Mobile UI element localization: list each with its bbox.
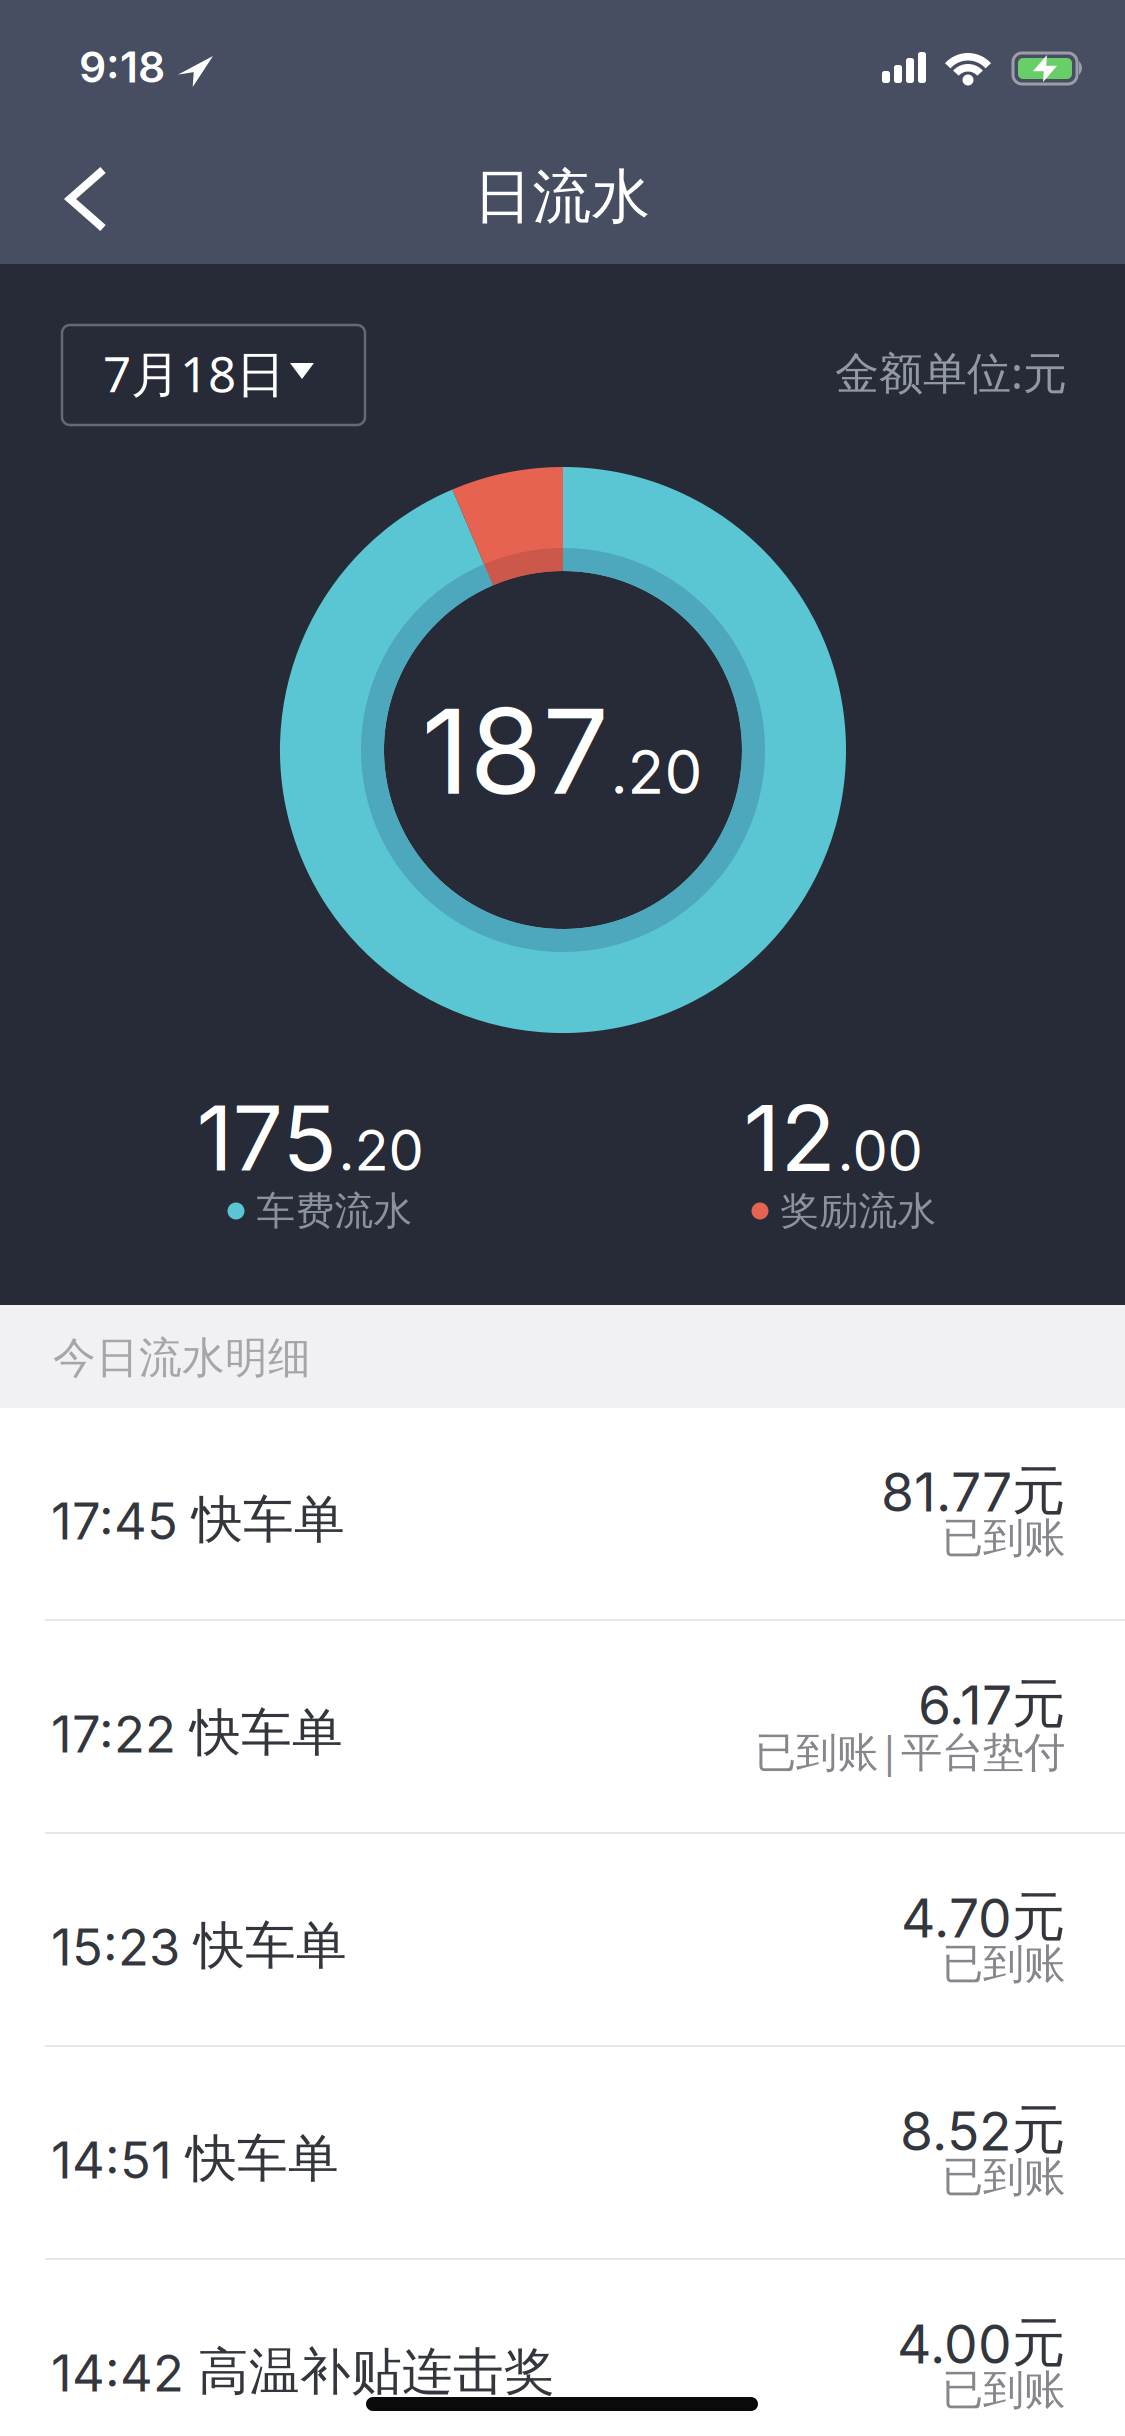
staticText: 金额单位:元 bbox=[835, 342, 1067, 402]
staticText: 17:22 快车单 bbox=[51, 1701, 343, 1765]
staticText: 车费流水 bbox=[256, 1187, 412, 1235]
staticText: .20 bbox=[610, 736, 702, 808]
staticText: .00 bbox=[837, 1117, 922, 1184]
staticText: 已到账 bbox=[942, 2364, 1065, 2416]
staticText: 4.70元 bbox=[901, 1883, 1065, 1951]
staticText: 15:23 快车单 bbox=[51, 1914, 347, 1978]
staticText: 7月18日 bbox=[103, 339, 285, 407]
staticText: 187 bbox=[421, 680, 608, 822]
staticText: 日流水 bbox=[473, 160, 650, 234]
staticText: 17:45 快车单 bbox=[51, 1488, 345, 1552]
staticText: 已到账 bbox=[942, 2151, 1065, 2203]
staticText: .20 bbox=[338, 1116, 423, 1184]
staticText: 14:42 高温补贴连击奖 bbox=[51, 2340, 555, 2404]
staticText: 4.00元 bbox=[897, 2309, 1065, 2377]
staticText: 14:51 快车单 bbox=[51, 2127, 339, 2191]
staticText: 已到账 bbox=[942, 1512, 1065, 1564]
staticText: 9:18 bbox=[79, 41, 165, 93]
staticText: 已到账 bbox=[942, 1938, 1065, 1990]
staticText: 奖励流水 bbox=[780, 1187, 936, 1235]
staticText: 175 bbox=[196, 1084, 336, 1192]
staticText: 今日流水明细 bbox=[53, 1331, 311, 1385]
staticText: 已到账|平台垫付 bbox=[755, 1723, 1065, 1779]
staticText: 81.77元 bbox=[881, 1457, 1065, 1525]
staticText: 6.17元 bbox=[918, 1670, 1065, 1738]
staticText: 8.52元 bbox=[900, 2096, 1065, 2164]
staticText: 12 bbox=[743, 1083, 835, 1193]
